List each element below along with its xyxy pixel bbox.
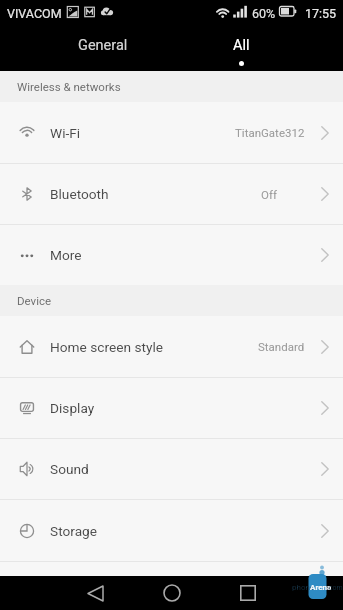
staticText: Sound: [50, 461, 89, 477]
staticText: VIVACOM: [7, 6, 62, 21]
staticText: More: [50, 247, 82, 263]
staticText: Arena: [310, 583, 332, 592]
button[interactable]: Back: [72, 576, 118, 610]
staticText: Wireless & networks: [17, 80, 121, 93]
staticText: All: [233, 37, 250, 54]
button[interactable]: Recent apps: [225, 576, 271, 610]
button[interactable]: General: [33, 26, 173, 71]
button[interactable]: Home screen style: [0, 316, 343, 377]
staticText: Standard: [258, 340, 305, 353]
button[interactable]: Wi-Fi: [0, 102, 343, 163]
staticText: General: [78, 37, 128, 54]
button[interactable]: Storage: [0, 500, 343, 561]
staticText: phone: [292, 583, 315, 592]
button[interactable]: More: [0, 225, 343, 285]
staticText: Wi-Fi: [50, 125, 81, 141]
staticText: 17:55: [305, 6, 337, 21]
staticText: .com: [327, 584, 343, 592]
staticText: Bluetooth: [50, 186, 109, 202]
button[interactable]: Home: [149, 576, 195, 610]
button[interactable]: All: [171, 26, 311, 71]
button[interactable]: Display: [0, 378, 343, 438]
staticText: Display: [50, 400, 95, 416]
staticText: Home screen style: [50, 339, 164, 355]
staticText: Storage: [50, 523, 98, 539]
staticText: Off: [261, 188, 277, 201]
button[interactable]: Bluetooth: [0, 164, 343, 224]
staticText: TitanGate312: [235, 126, 305, 139]
staticText: Device: [17, 294, 52, 307]
staticText: 60%: [252, 6, 276, 21]
button[interactable]: Sound: [0, 439, 343, 499]
